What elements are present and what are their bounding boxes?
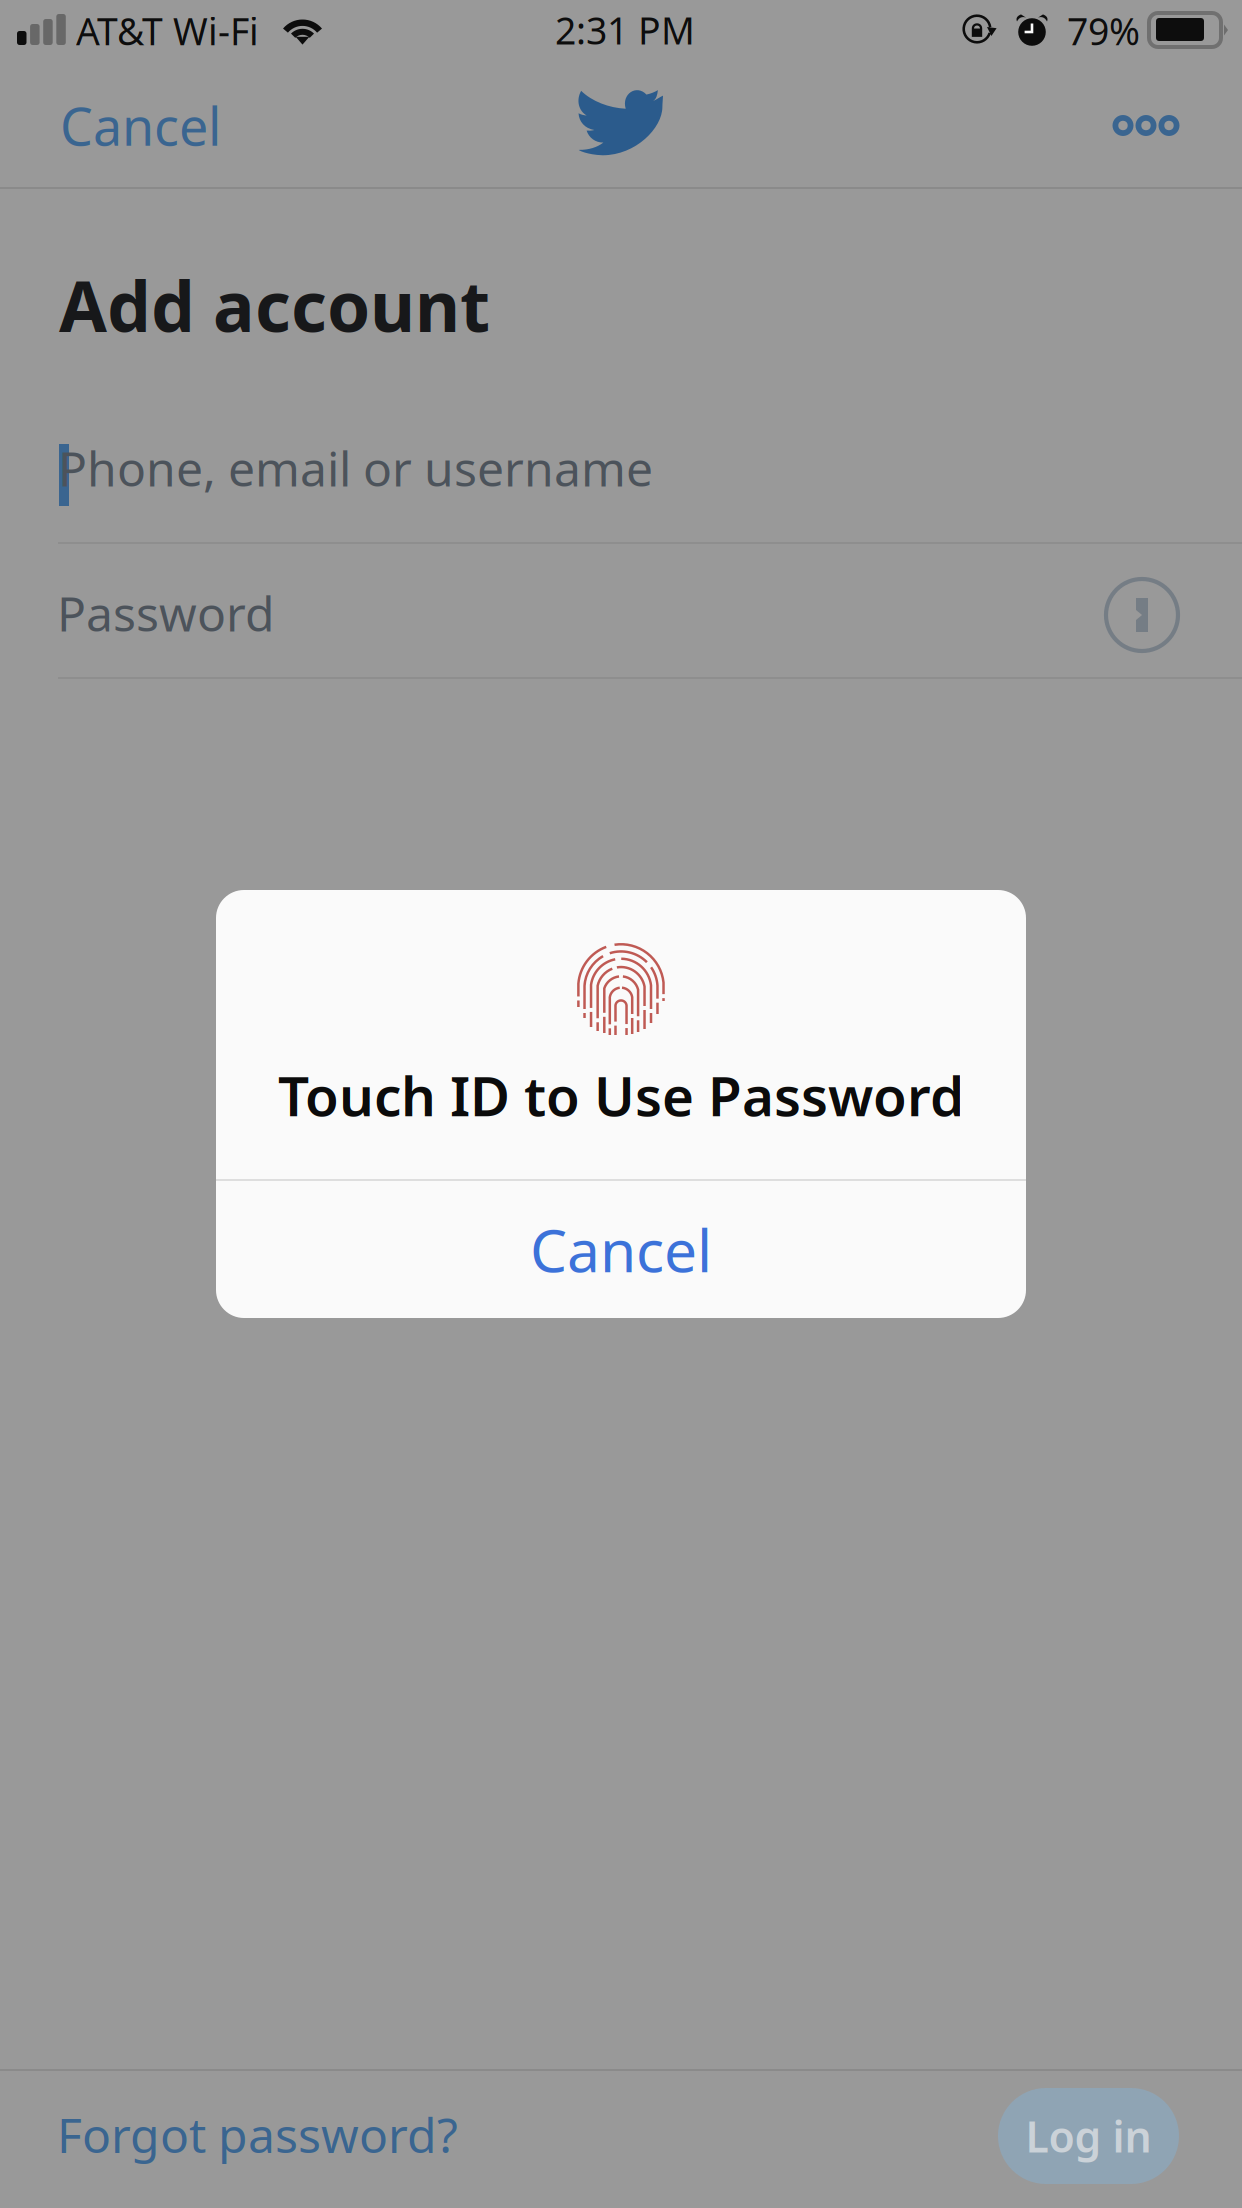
staticText: Password <box>57 581 275 645</box>
staticText: 79% <box>1067 6 1140 56</box>
staticText: Touch ID to Use Password <box>278 1059 964 1131</box>
button[interactable]: 1Password <box>0 0 1242 2208</box>
staticText: Add account <box>59 259 490 351</box>
button[interactable]: Cancel <box>216 890 1026 1318</box>
button[interactable]: Log in <box>0 0 1242 2208</box>
button[interactable]: Forgot password? <box>0 0 1242 2208</box>
staticText: Log in <box>1025 2108 1151 2164</box>
staticText: 2:31 PM <box>555 5 695 55</box>
staticText: Phone, email or username <box>58 436 653 500</box>
button[interactable]: More options <box>0 0 1242 2208</box>
staticText: AT&T Wi-Fi <box>76 6 259 56</box>
button[interactable]: Cancel <box>0 0 1242 2208</box>
staticText: Cancel <box>530 1210 712 1288</box>
staticText: Cancel <box>60 91 221 160</box>
staticText: Forgot password? <box>57 2103 458 2166</box>
